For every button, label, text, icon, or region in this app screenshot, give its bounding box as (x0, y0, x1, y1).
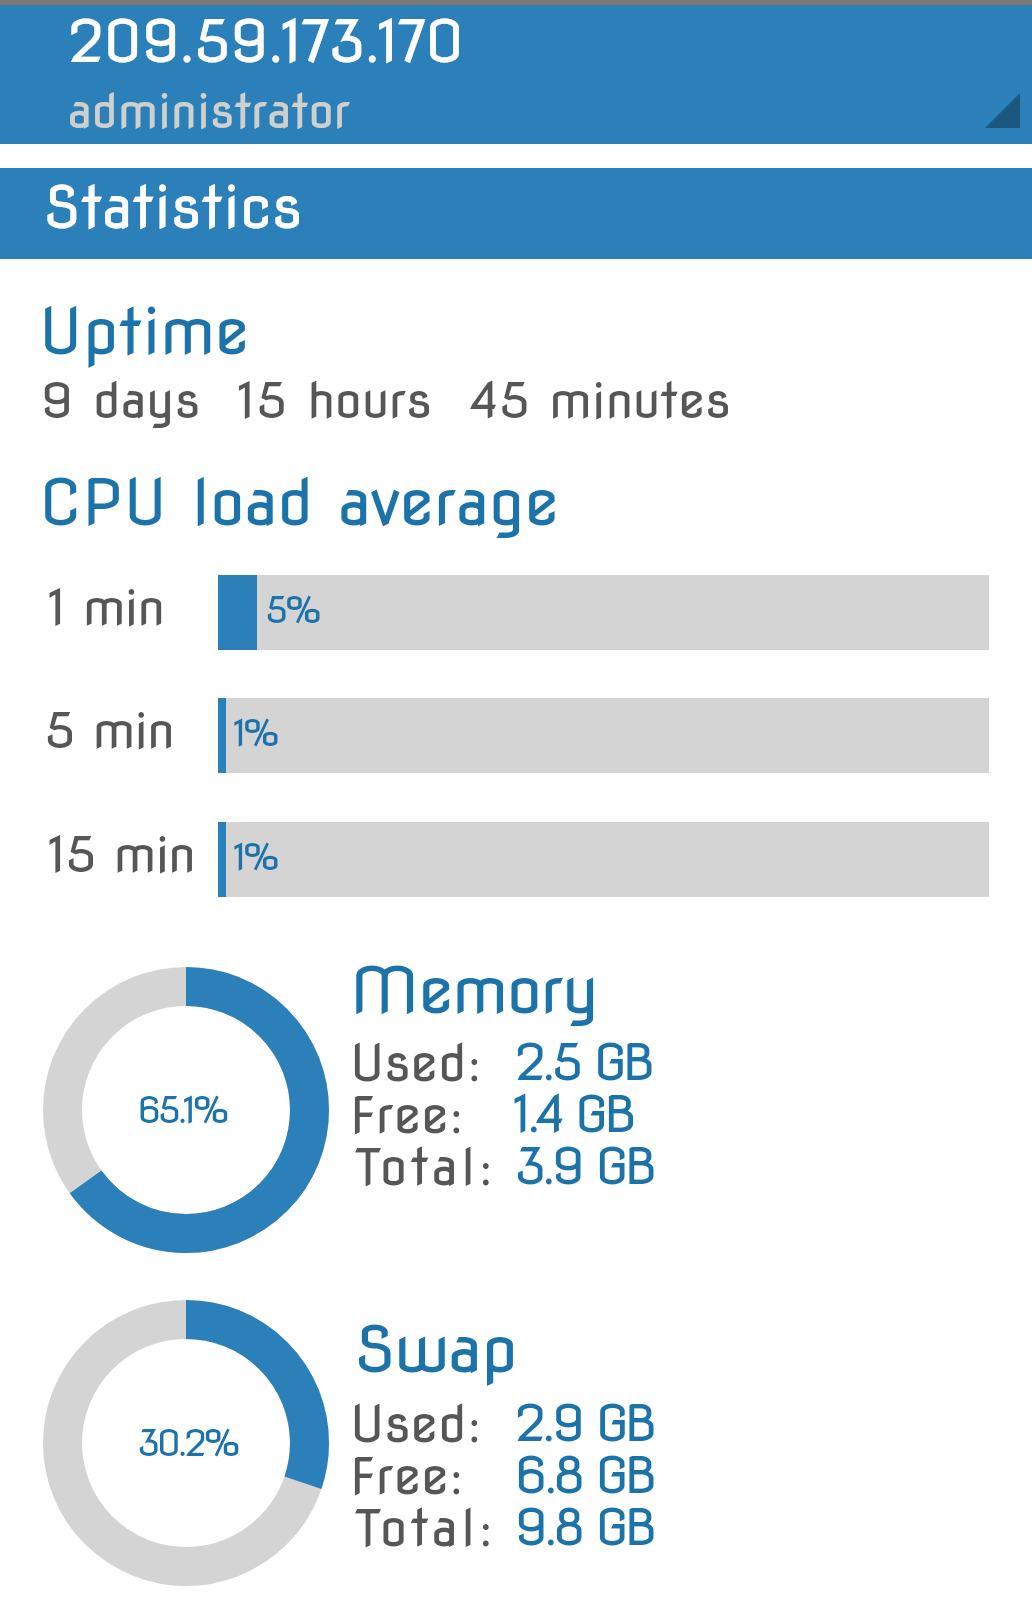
staticText: 1% (234, 711, 277, 754)
staticText: 9 days 15 hours 45 minutes (40, 371, 731, 430)
staticText: Uptime (39, 294, 250, 370)
staticText: 1.4 GB (514, 1084, 633, 1144)
staticText: 65.1% (137, 1088, 226, 1131)
staticText: 15 min (49, 825, 195, 884)
staticText: 6.8 GB (514, 1445, 653, 1505)
button[interactable]: Statistics (0, 168, 1032, 259)
button[interactable]: 209.59.173.170 (0, 5, 1032, 144)
staticText: 1% (234, 835, 277, 878)
staticText: 30.2% (137, 1421, 237, 1464)
button[interactable]: 1% (218, 822, 989, 897)
staticText: Free: (350, 1085, 464, 1145)
staticText: Statistics (43, 172, 303, 242)
button[interactable]: 5% (218, 575, 989, 650)
staticText: 1 min (49, 578, 164, 637)
staticText: CPU load average (39, 465, 560, 541)
button[interactable]: Memory usage 65.1% (43, 967, 329, 1253)
button[interactable]: 1% (218, 698, 989, 773)
staticText: Swap (354, 1311, 517, 1388)
staticText: Used: (350, 1033, 482, 1093)
staticText: Free: (350, 1446, 464, 1506)
staticText: administrator (68, 84, 351, 140)
other: Connection signal (985, 93, 1020, 128)
staticText: Total: (355, 1137, 497, 1197)
staticText: Memory (350, 952, 599, 1029)
staticText: 9.8 GB (514, 1497, 653, 1557)
staticText: 209.59.173.170 (67, 6, 463, 76)
staticText: 5% (265, 588, 319, 631)
staticText: Used: (350, 1394, 482, 1454)
button[interactable]: Swap usage 30.2% (43, 1300, 329, 1586)
staticText: 3.9 GB (514, 1136, 653, 1196)
staticText: 2.5 GB (514, 1032, 652, 1092)
staticText: 2.9 GB (514, 1393, 654, 1453)
staticText: 5 min (44, 701, 174, 760)
staticText: Total: (355, 1498, 497, 1558)
